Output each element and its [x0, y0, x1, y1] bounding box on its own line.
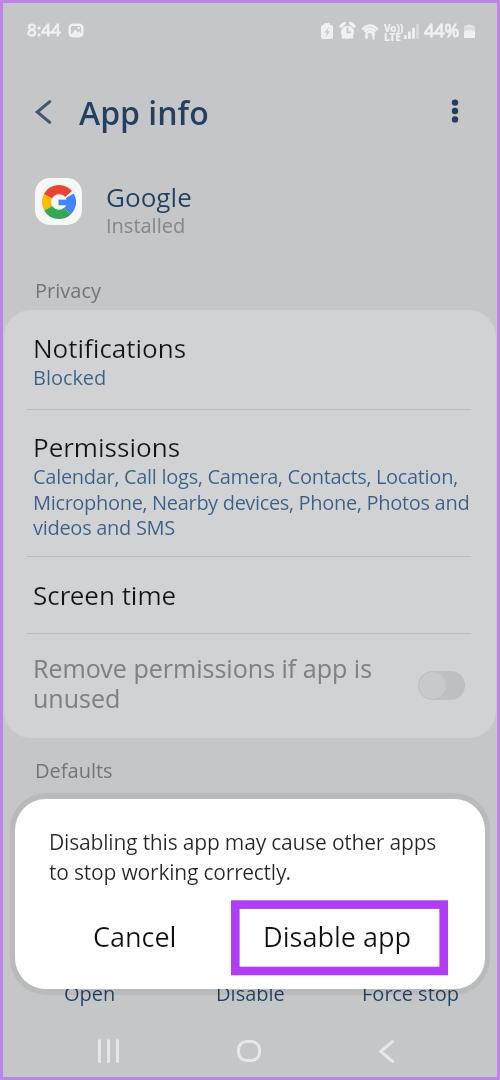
staticText: Calendar, Call logs, Camera, Contacts, L… [33, 463, 475, 540]
staticText: Defaults [35, 757, 113, 784]
button[interactable] [4, 633, 496, 738]
button[interactable]: Navigate up [20, 88, 68, 136]
staticText: Cancel [93, 918, 177, 955]
button[interactable] [4, 556, 496, 633]
staticText: Google [106, 179, 192, 214]
button[interactable]: Force stop [351, 976, 471, 1010]
staticText: Privacy [35, 277, 102, 304]
staticText: Screen time [33, 577, 177, 612]
staticText: LTE [384, 30, 401, 44]
button[interactable]: Google [0, 170, 500, 250]
staticText: 44% [424, 18, 460, 43]
staticText: Open [64, 980, 116, 1007]
staticText: Disable app [263, 918, 412, 955]
button[interactable]: Disable app [229, 898, 445, 974]
button[interactable]: Recent apps [68, 1022, 148, 1080]
button[interactable]: Cancel [35, 898, 235, 974]
staticText: Vo)) [384, 21, 404, 35]
staticText: App info [79, 91, 209, 135]
staticText: 8:44 [27, 18, 61, 41]
staticText: Installed [106, 212, 186, 239]
button[interactable] [4, 310, 496, 409]
staticText: Notifications [33, 330, 187, 365]
button[interactable]: Back [347, 1022, 427, 1080]
staticText: Force stop [362, 980, 460, 1007]
button[interactable]: More options [432, 88, 478, 134]
button[interactable]: Open [30, 976, 150, 1010]
staticText: Remove permissions if app is unused [33, 651, 378, 715]
button[interactable]: Home [209, 1022, 289, 1080]
button[interactable]: Disable [190, 976, 310, 1010]
staticText: Disable [216, 980, 285, 1007]
staticText: Disabling this app may cause other apps … [49, 828, 447, 886]
staticText: Blocked [33, 364, 107, 391]
staticText: Permissions [33, 429, 181, 464]
button[interactable] [4, 409, 496, 556]
